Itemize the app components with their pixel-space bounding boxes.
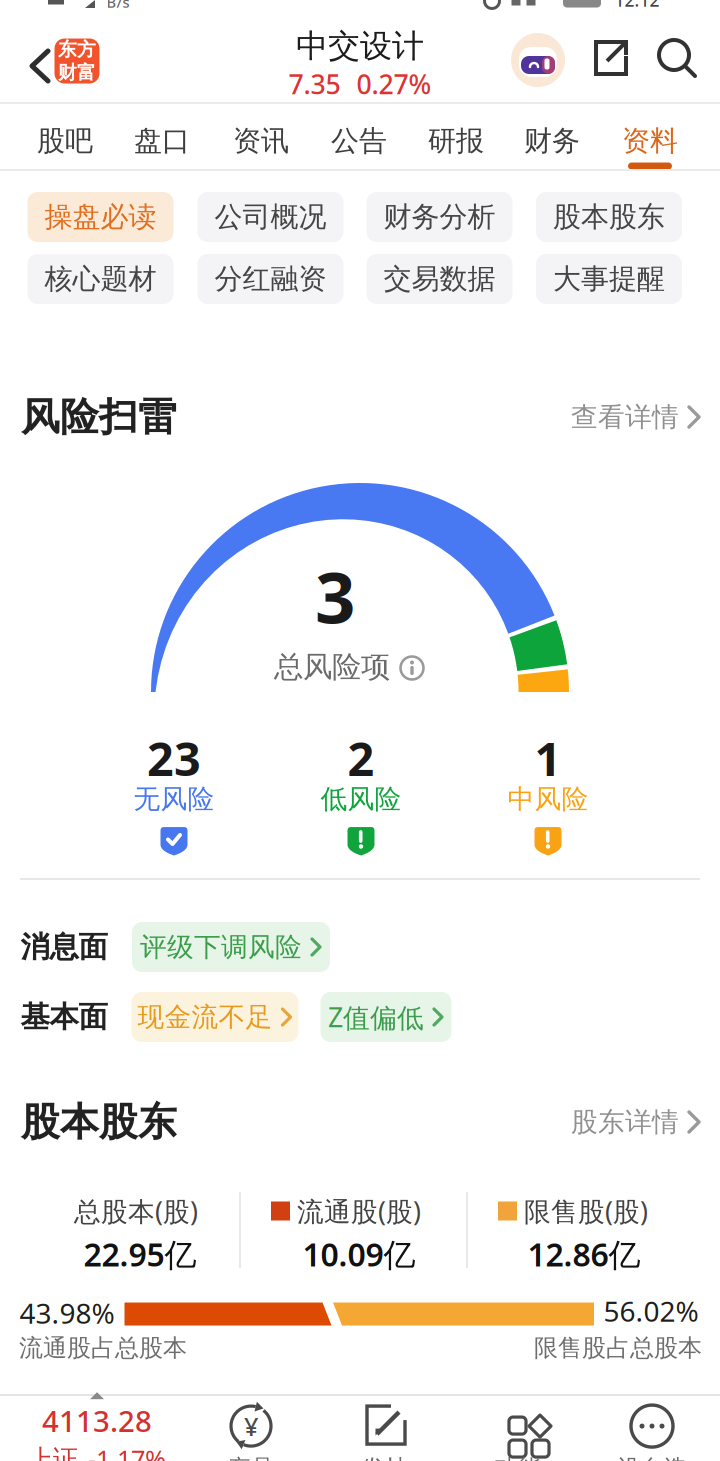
staticText: 股吧: [37, 124, 93, 158]
button[interactable]: 4113.28: [28, 1392, 166, 1461]
button[interactable]: 搜索: [659, 40, 697, 78]
staticText: 财务分析: [383, 200, 495, 234]
button[interactable]: 助手: [511, 33, 565, 87]
staticText: 核心题材: [44, 262, 156, 296]
staticText: 56.02%: [603, 1292, 698, 1330]
staticText: 现金流不足: [137, 1001, 272, 1033]
button[interactable]: 操盘必读: [27, 192, 173, 242]
staticText: 公告: [331, 124, 387, 158]
button[interactable]: 核心题材: [27, 254, 173, 304]
button[interactable]: Z值偏低: [320, 992, 451, 1042]
button[interactable]: 功能: [495, 1404, 541, 1461]
button[interactable]: 股本股东: [536, 192, 682, 242]
staticText: 3: [315, 549, 355, 643]
staticText: 发帖: [362, 1454, 408, 1461]
staticText: 操盘必读: [44, 200, 156, 234]
staticText: 中交设计: [296, 26, 424, 66]
staticText: -1.17%: [88, 1442, 166, 1461]
staticText: 12.86亿: [527, 1233, 640, 1275]
staticText: 流通股(股): [297, 1193, 421, 1229]
button[interactable]: 发帖: [362, 1404, 408, 1461]
button[interactable]: 分红融资: [197, 254, 343, 304]
staticText: 分红融资: [214, 262, 326, 296]
staticText: 上证: [28, 1443, 78, 1461]
staticText: 产品: [228, 1454, 274, 1461]
staticText: 7.35: [288, 66, 340, 102]
staticText: 无风险: [133, 783, 214, 815]
staticText: 4113.28: [42, 1401, 152, 1440]
staticText: 22.95亿: [83, 1233, 196, 1275]
button[interactable]: 财务: [507, 113, 597, 169]
button[interactable]: 资料: [605, 113, 695, 169]
staticText: 总股本(股): [74, 1193, 198, 1229]
button[interactable]: 分享: [592, 40, 630, 78]
staticText: Z值偏低: [328, 999, 424, 1035]
button[interactable]: 现金流不足: [131, 992, 298, 1042]
staticText: 盘口: [134, 124, 190, 158]
staticText: 股东详情: [571, 1106, 679, 1138]
staticText: 10.09亿: [302, 1233, 415, 1275]
button[interactable]: 研报: [411, 113, 501, 169]
staticText: 流通股占总股本: [19, 1333, 187, 1363]
staticText: 股本股东: [553, 200, 665, 234]
staticText: 功能: [495, 1454, 541, 1461]
staticText: 资讯: [233, 124, 289, 158]
staticText: 研报: [428, 124, 484, 158]
staticText: 43.98%: [19, 1294, 114, 1332]
button[interactable]: 设自选: [617, 1404, 686, 1461]
staticText: 大事提醒: [553, 262, 665, 296]
staticText: B/s: [106, 0, 129, 12]
button[interactable]: 说明: [400, 656, 424, 680]
staticText: 12:12: [614, 0, 659, 11]
button[interactable]: 股东详情: [571, 1106, 701, 1138]
staticText: 设自选: [617, 1454, 686, 1461]
staticText: 东方: [58, 38, 96, 61]
button[interactable]: 大事提醒: [536, 254, 682, 304]
button[interactable]: 东方财富: [54, 38, 99, 83]
staticText: 评级下调风险: [140, 931, 302, 963]
staticText: 2: [347, 727, 374, 789]
staticText: 股本股东: [21, 1098, 177, 1146]
staticText: 财富: [58, 61, 96, 84]
staticText: 基本面: [20, 999, 107, 1035]
staticText: 中风险: [507, 783, 588, 815]
button[interactable]: 资讯: [216, 113, 306, 169]
button[interactable]: 股吧: [20, 113, 110, 169]
staticText: 低风险: [320, 783, 401, 815]
button[interactable]: 查看详情: [571, 401, 701, 433]
button[interactable]: 财务分析: [366, 192, 512, 242]
button[interactable]: 公司概况: [197, 192, 343, 242]
button[interactable]: 公告: [314, 113, 404, 169]
staticText: 消息面: [20, 929, 107, 965]
staticText: 查看详情: [571, 401, 679, 433]
staticText: 总风险项: [274, 649, 390, 685]
staticText: 交易数据: [383, 262, 495, 296]
button[interactable]: 交易数据: [366, 254, 512, 304]
staticText: 财务: [524, 124, 580, 158]
staticText: 公司概况: [214, 200, 326, 234]
staticText: 限售股(股): [524, 1193, 648, 1229]
button[interactable]: 产品: [228, 1404, 274, 1461]
staticText: 风险扫雷: [21, 393, 177, 441]
staticText: 1: [534, 727, 561, 789]
staticText: 0.27%: [356, 66, 431, 102]
staticText: ¥: [244, 1409, 258, 1443]
staticText: 23: [147, 727, 201, 789]
button[interactable]: 盘口: [117, 113, 207, 169]
button[interactable]: 评级下调风险: [132, 922, 330, 972]
button[interactable]: Back: [30, 49, 50, 83]
staticText: 资料: [622, 124, 678, 158]
staticText: 限售股占总股本: [534, 1333, 702, 1363]
